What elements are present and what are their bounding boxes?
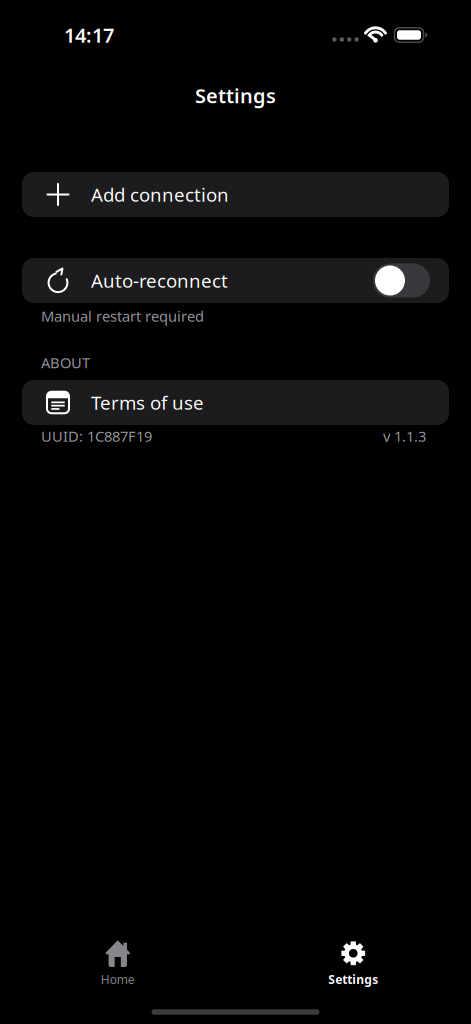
button[interactable]: Terms of use: [22, 380, 449, 425]
staticText: ABOUT: [41, 353, 90, 372]
button[interactable]: Add connection: [22, 172, 449, 217]
staticText: 14:17: [64, 22, 114, 48]
staticText: v 1.1.3: [383, 426, 426, 446]
staticText: Auto-reconnect: [91, 268, 228, 293]
staticText: Settings: [328, 971, 378, 987]
staticText: Manual restart required: [41, 306, 204, 326]
button[interactable]: Settings: [235, 940, 471, 987]
staticText: UUID: 1C887F19: [41, 426, 152, 446]
button[interactable]: Auto-reconnect: [373, 263, 430, 297]
staticText: Add connection: [91, 182, 229, 207]
button[interactable]: Home: [0, 940, 235, 987]
staticText: Terms of use: [91, 390, 204, 415]
staticText: Settings: [195, 82, 276, 109]
staticText: Home: [101, 971, 135, 987]
